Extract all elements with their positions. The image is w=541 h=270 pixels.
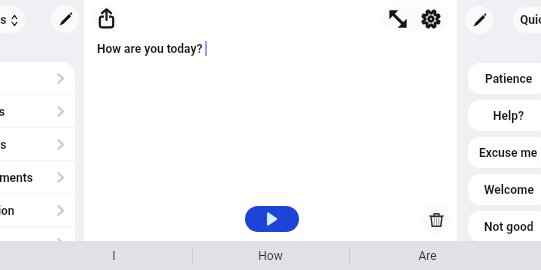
button[interactable]: Quick: [513, 7, 541, 33]
button[interactable]: Phrases: [0, 95, 75, 128]
staticText: Feelings: [0, 138, 7, 152]
button[interactable]: Basics: [0, 227, 75, 260]
button[interactable]: Compliments: [0, 161, 75, 194]
button[interactable]: Not good: [468, 211, 541, 242]
button[interactable]: How: [192, 241, 349, 270]
button[interactable]: Clear: [421, 204, 451, 234]
button[interactable]: Edit categories: [51, 5, 79, 33]
button[interactable]: Topics: [0, 6, 25, 33]
staticText: Patience: [485, 72, 533, 86]
staticText: Are: [418, 249, 437, 263]
button[interactable]: Help?: [468, 100, 541, 131]
staticText: Phrases: [0, 105, 5, 119]
button[interactable]: Settings: [414, 7, 448, 31]
staticText: Excuse me: [479, 146, 538, 160]
staticText: I: [112, 249, 116, 263]
button[interactable]: Speak: [245, 206, 299, 232]
button[interactable]: Share: [93, 5, 119, 31]
staticText: Quick: [520, 13, 541, 27]
staticText: Not good: [484, 220, 534, 234]
staticText: Education: [0, 204, 15, 218]
staticText: How: [258, 249, 283, 263]
button[interactable]: Home: [0, 62, 75, 95]
staticText: Help?: [493, 109, 524, 123]
button[interactable]: Welcome: [468, 174, 541, 205]
button[interactable]: I: [35, 241, 192, 270]
button[interactable]: Patience: [468, 63, 541, 94]
button[interactable]: Edit quick phrases: [465, 6, 493, 34]
staticText: Compliments: [0, 171, 33, 185]
button[interactable]: Education: [0, 194, 75, 227]
button[interactable]: Feelings: [0, 128, 75, 161]
staticText: How are you today?: [97, 42, 203, 56]
staticText: Welcome: [484, 183, 534, 197]
button[interactable]: Are: [349, 241, 506, 270]
button[interactable]: Expand: [381, 7, 414, 31]
button[interactable]: Excuse me: [468, 137, 541, 168]
staticText: Topics: [0, 13, 7, 27]
